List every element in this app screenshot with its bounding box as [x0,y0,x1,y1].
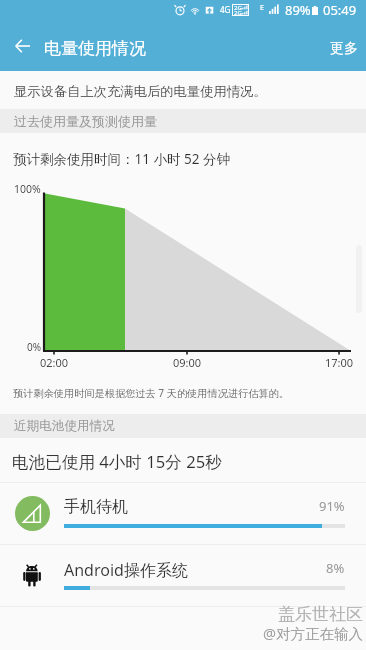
staticText: 2G [234,4,242,12]
staticText: 近期电池使用情况 [14,418,115,434]
button[interactable]: Back [3,28,41,66]
staticText: 过去使用量及预测使用量 [14,113,157,129]
button[interactable]: 手机待机 [0,483,366,545]
staticText: 电量使用情况 [44,38,146,59]
staticText: 02:00 [40,355,69,370]
staticText: 手机待机 [64,497,128,517]
staticText: 91% [319,497,345,515]
staticText: 盖乐世社区 [278,604,363,625]
staticText: 05:49 [323,1,357,19]
staticText: 89% [285,1,311,19]
staticText: @对方正在输入 [263,623,364,643]
staticText: 4G [220,4,231,15]
staticText: 预计剩余使用时间是根据您过去 7 天的使用情况进行估算的。 [13,386,289,400]
staticText: 更多 [330,40,358,58]
staticText: 显示设备自上次充满电后的电量使用情况。 [14,83,267,100]
button[interactable]: Android操作系统 [0,545,366,607]
staticText: 0% [27,340,42,354]
staticText: 100% [14,182,41,196]
staticText: Android操作系统 [64,559,188,581]
staticText: 预计剩余使用时间：11 小时 52 分钟 [13,150,230,168]
staticText: 09:00 [173,355,202,370]
staticText: E [260,3,264,13]
button[interactable]: 更多 [320,26,366,71]
staticText: 17:00 [325,355,354,370]
staticText: 8% [326,559,345,577]
staticText: 2G [234,9,242,17]
staticText: 电池已使用 4小时 15分 25秒 [12,450,222,473]
